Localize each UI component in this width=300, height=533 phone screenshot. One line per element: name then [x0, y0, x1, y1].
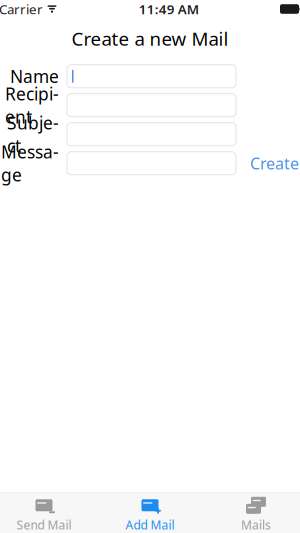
staticText: Message: [1, 140, 59, 186]
staticText: Recipient: [5, 82, 59, 128]
button[interactable]: [67, 123, 236, 146]
staticText: Send Mail: [16, 517, 71, 533]
staticText: 11:49 AM: [139, 0, 199, 18]
button[interactable]: Send Mail: [0, 492, 97, 533]
button[interactable]: Add Mail: [97, 492, 203, 533]
staticText: Add Mail: [125, 517, 174, 533]
button[interactable]: Create: [236, 149, 299, 178]
staticText: Subject: [7, 111, 59, 157]
button[interactable]: Mails: [203, 492, 300, 533]
staticText: Create a new Mail: [71, 26, 228, 51]
button[interactable]: [67, 94, 236, 117]
staticText: Carrier: [0, 0, 43, 18]
button[interactable]: [67, 65, 236, 88]
staticText: Mails: [241, 517, 271, 533]
staticText: Create: [250, 153, 299, 174]
staticText: Name: [10, 65, 59, 88]
button[interactable]: [67, 152, 236, 175]
